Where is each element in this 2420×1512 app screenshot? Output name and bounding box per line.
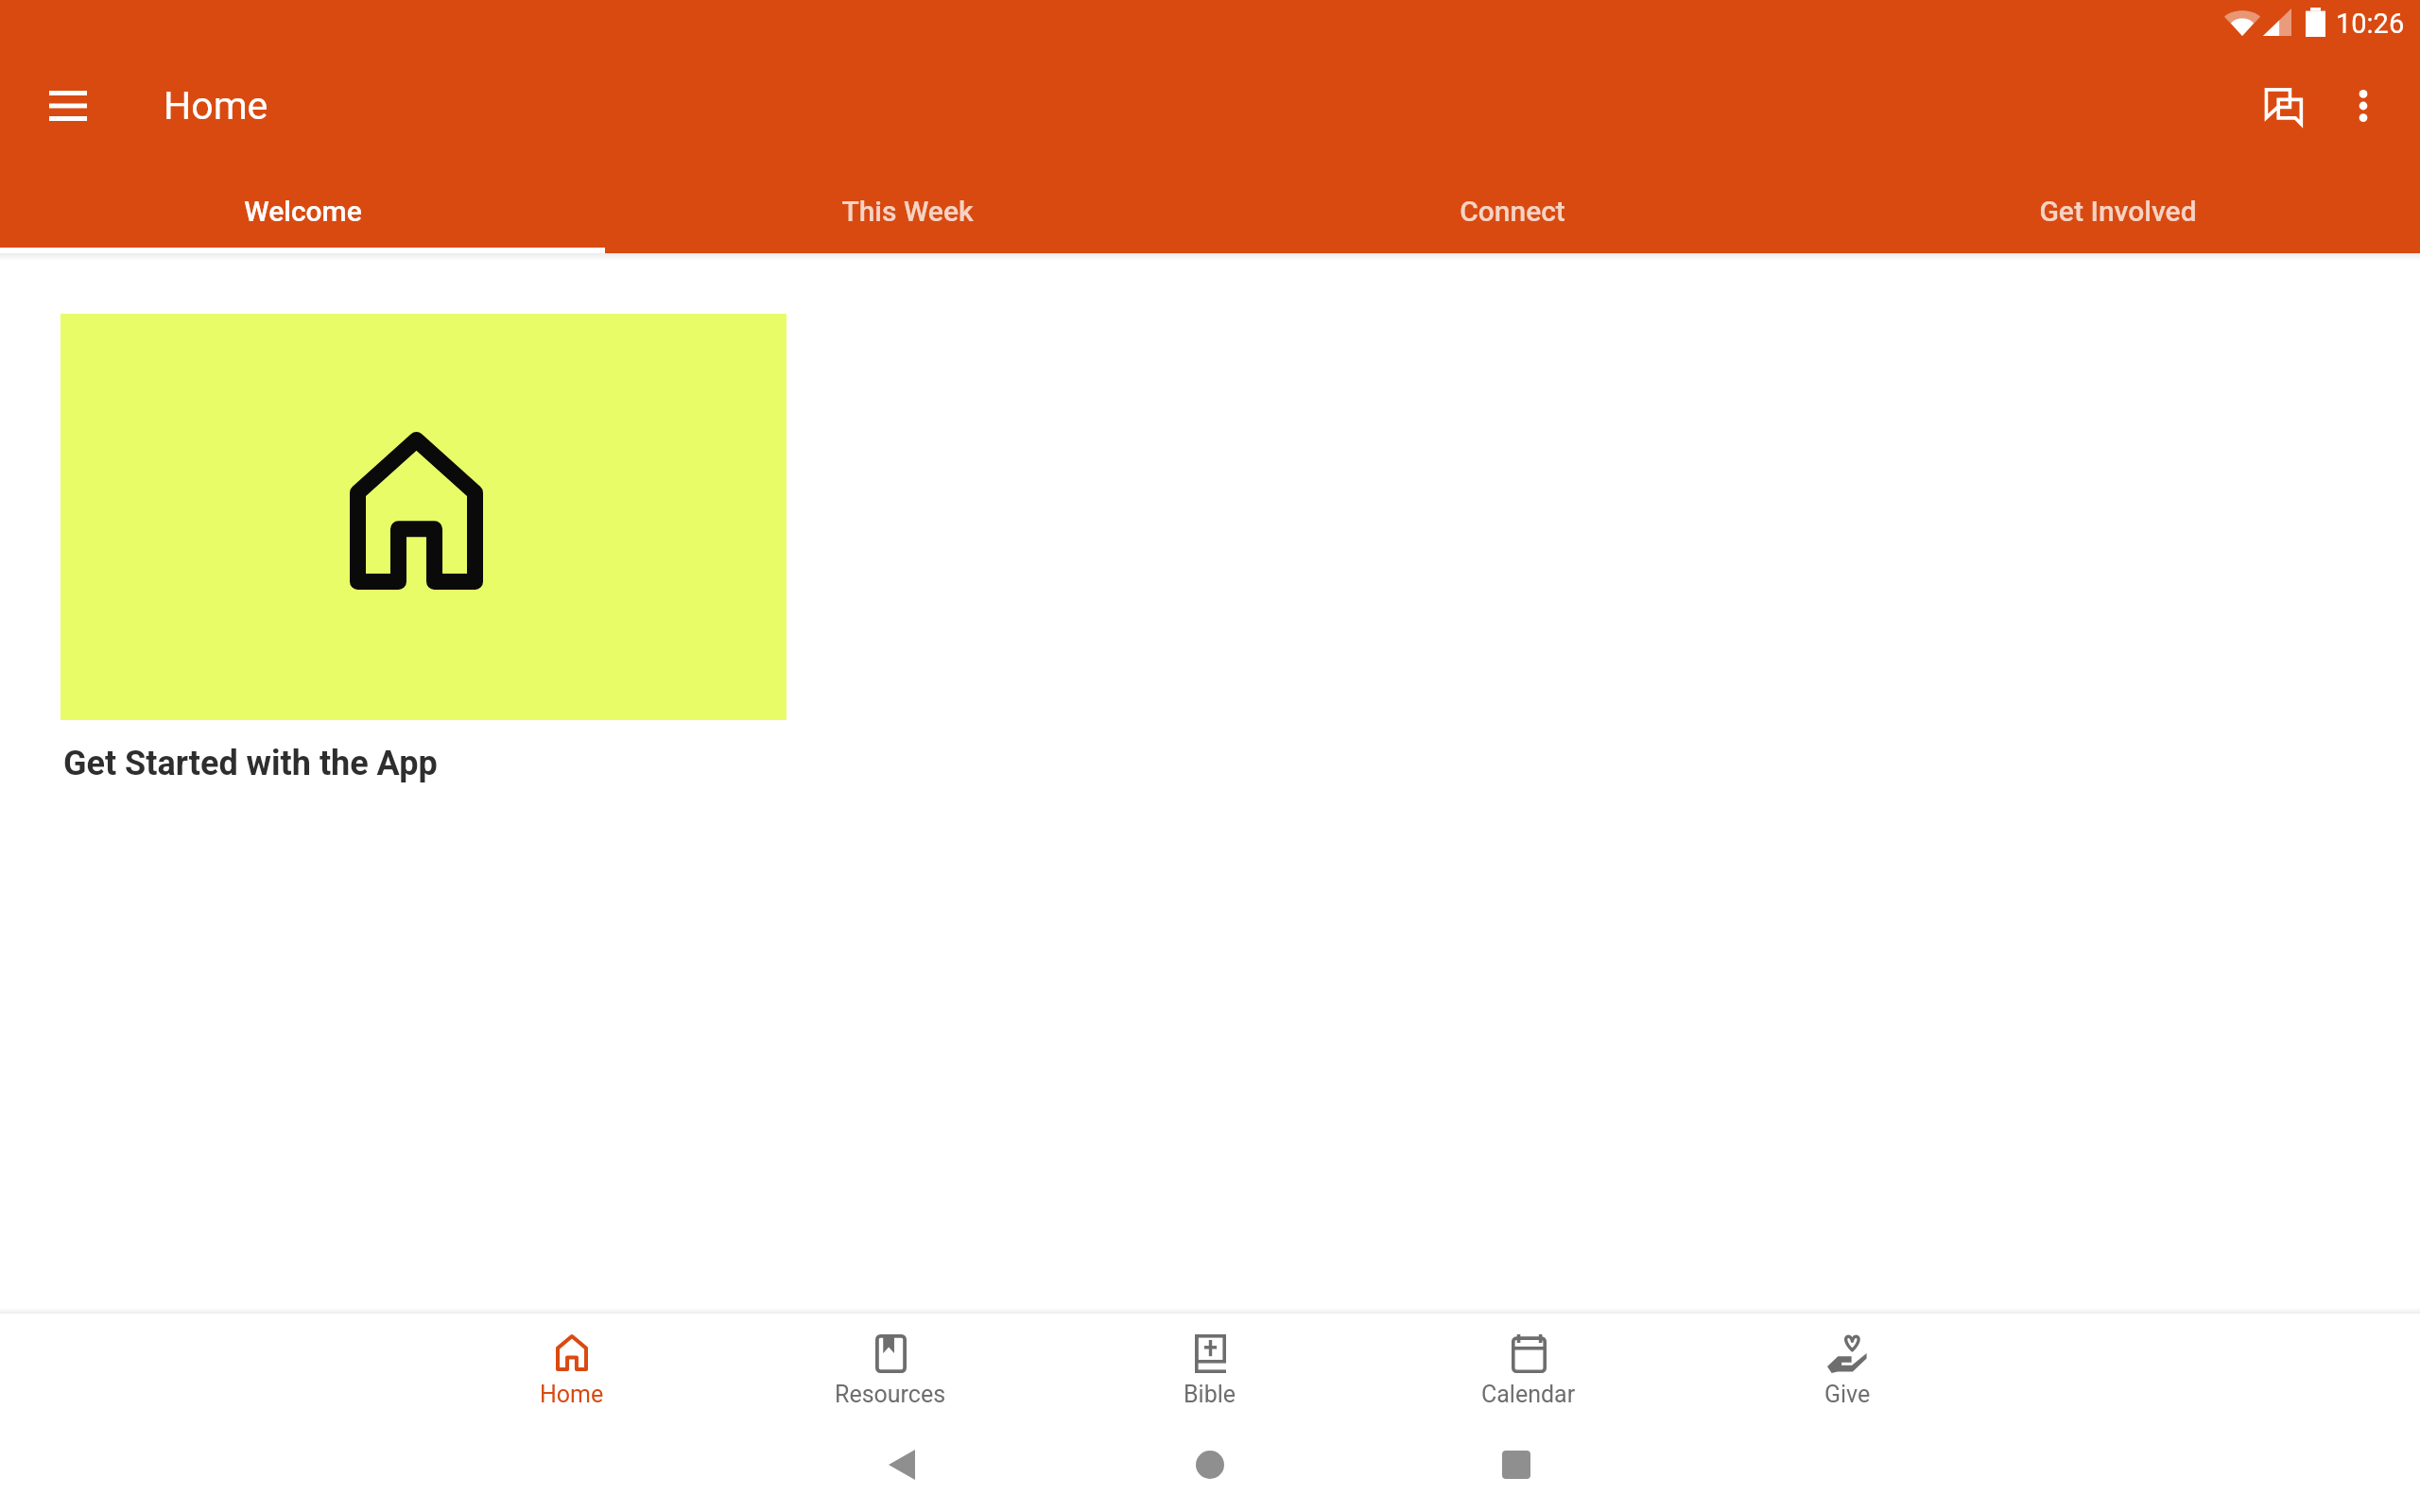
button[interactable]: More options [2318,60,2409,151]
staticText: Calendar [1481,1381,1576,1408]
button[interactable]: Give [1705,1314,1989,1417]
button[interactable]: Recent apps [1460,1417,1573,1512]
button[interactable]: Connect [1210,166,1815,253]
button[interactable]: Get Started with the App [60,314,786,760]
button[interactable]: Home [430,1314,714,1417]
button[interactable]: Welcome [0,166,605,253]
button[interactable]: Resources [749,1314,1032,1417]
staticText: Welcome [244,195,362,228]
button[interactable]: Get Involved [1815,166,2420,253]
staticText: Get Involved [2039,195,2197,228]
staticText: Get Started with the App [63,744,438,783]
staticText: Home [540,1381,604,1408]
button[interactable]: Messages [2238,60,2328,151]
staticText: Bible [1184,1381,1236,1408]
staticText: Connect [1460,195,1565,228]
staticText: This Week [841,195,974,228]
staticText: Give [1824,1381,1871,1408]
button[interactable]: Bible [1068,1314,1352,1417]
staticText: Resources [835,1381,946,1408]
button[interactable]: Home [1153,1417,1267,1512]
button[interactable]: Back [845,1417,959,1512]
button[interactable]: This Week [605,166,1210,253]
button[interactable]: Open navigation drawer [23,60,113,151]
staticText: Home [164,83,268,129]
button[interactable]: Calendar [1387,1314,1670,1417]
staticText: 10:26 [2336,8,2405,40]
